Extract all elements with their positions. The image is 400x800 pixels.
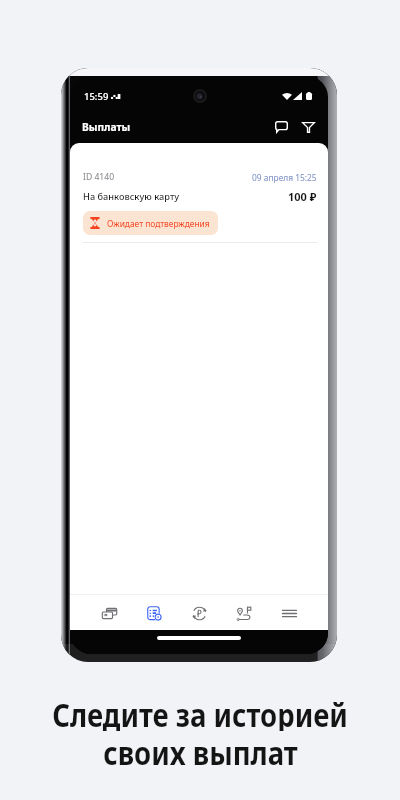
staticText: 09 апреля 15:25 <box>252 172 317 183</box>
button[interactable]: Refunds <box>177 596 222 630</box>
button[interactable]: Chat <box>268 115 295 139</box>
button[interactable]: Routes <box>222 596 267 630</box>
staticText: Выплаты <box>82 120 131 134</box>
button[interactable]: ID 4140 <box>70 143 328 243</box>
staticText: Ожидает подтверждения <box>107 218 210 229</box>
button[interactable]: Menu <box>267 596 312 630</box>
staticText: 15:59 <box>84 90 109 103</box>
button[interactable]: Cards <box>87 596 132 630</box>
staticText: 100 ₽ <box>288 189 317 204</box>
button[interactable]: Payouts <box>132 596 177 630</box>
staticText: своих выплат <box>103 731 298 775</box>
staticText: ID 4140 <box>83 171 115 183</box>
button[interactable]: Filter <box>295 115 322 139</box>
staticText: Следите за историей <box>52 693 348 731</box>
staticText: На банковскую карту <box>83 190 180 203</box>
